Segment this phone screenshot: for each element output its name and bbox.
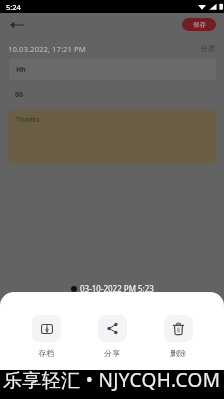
button[interactable]: Back xyxy=(7,18,26,32)
staticText: 保存 xyxy=(193,21,206,29)
button[interactable]: Delete xyxy=(145,315,211,358)
staticText: 03-10-2022 PM 5:23 xyxy=(80,283,154,294)
button[interactable]: Share xyxy=(79,315,145,358)
staticText: 分享 xyxy=(104,348,120,358)
staticText: Hh xyxy=(16,65,26,75)
button[interactable]: Archive xyxy=(13,315,79,358)
staticText: 删除 xyxy=(170,348,186,358)
staticText: 存档 xyxy=(38,348,54,358)
staticText: 分类 xyxy=(201,44,216,53)
staticText: 5:24 xyxy=(6,2,21,12)
staticText: 00 xyxy=(15,90,24,100)
staticText: Thanks xyxy=(16,115,40,125)
staticText: 10.03.2022, 17:21 PM xyxy=(8,44,86,55)
button[interactable]: 分类 xyxy=(201,44,216,53)
button[interactable]: 保存 xyxy=(182,18,216,31)
button[interactable]: Hh xyxy=(9,59,216,80)
staticText: 乐享轻汇 • NJYCQH.COM xyxy=(3,367,221,393)
